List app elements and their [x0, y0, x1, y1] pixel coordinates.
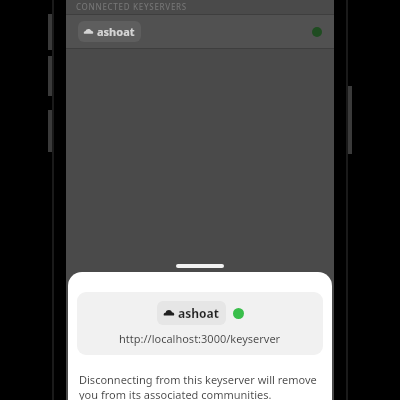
staticText: http://localhost:3000/keyserver — [119, 331, 281, 346]
button[interactable]: ashoat — [157, 301, 226, 325]
staticText: ashoat — [97, 24, 135, 39]
button[interactable]: ashoat — [66, 15, 334, 48]
staticText: Disconnecting from this keyserver will r… — [79, 372, 321, 400]
staticText: CONNECTED KEYSERVERS — [76, 1, 187, 12]
staticText: ashoat — [178, 305, 219, 321]
other: Connected — [312, 27, 322, 37]
button[interactable]: ashoat — [78, 21, 141, 42]
other: Connected — [233, 308, 244, 319]
